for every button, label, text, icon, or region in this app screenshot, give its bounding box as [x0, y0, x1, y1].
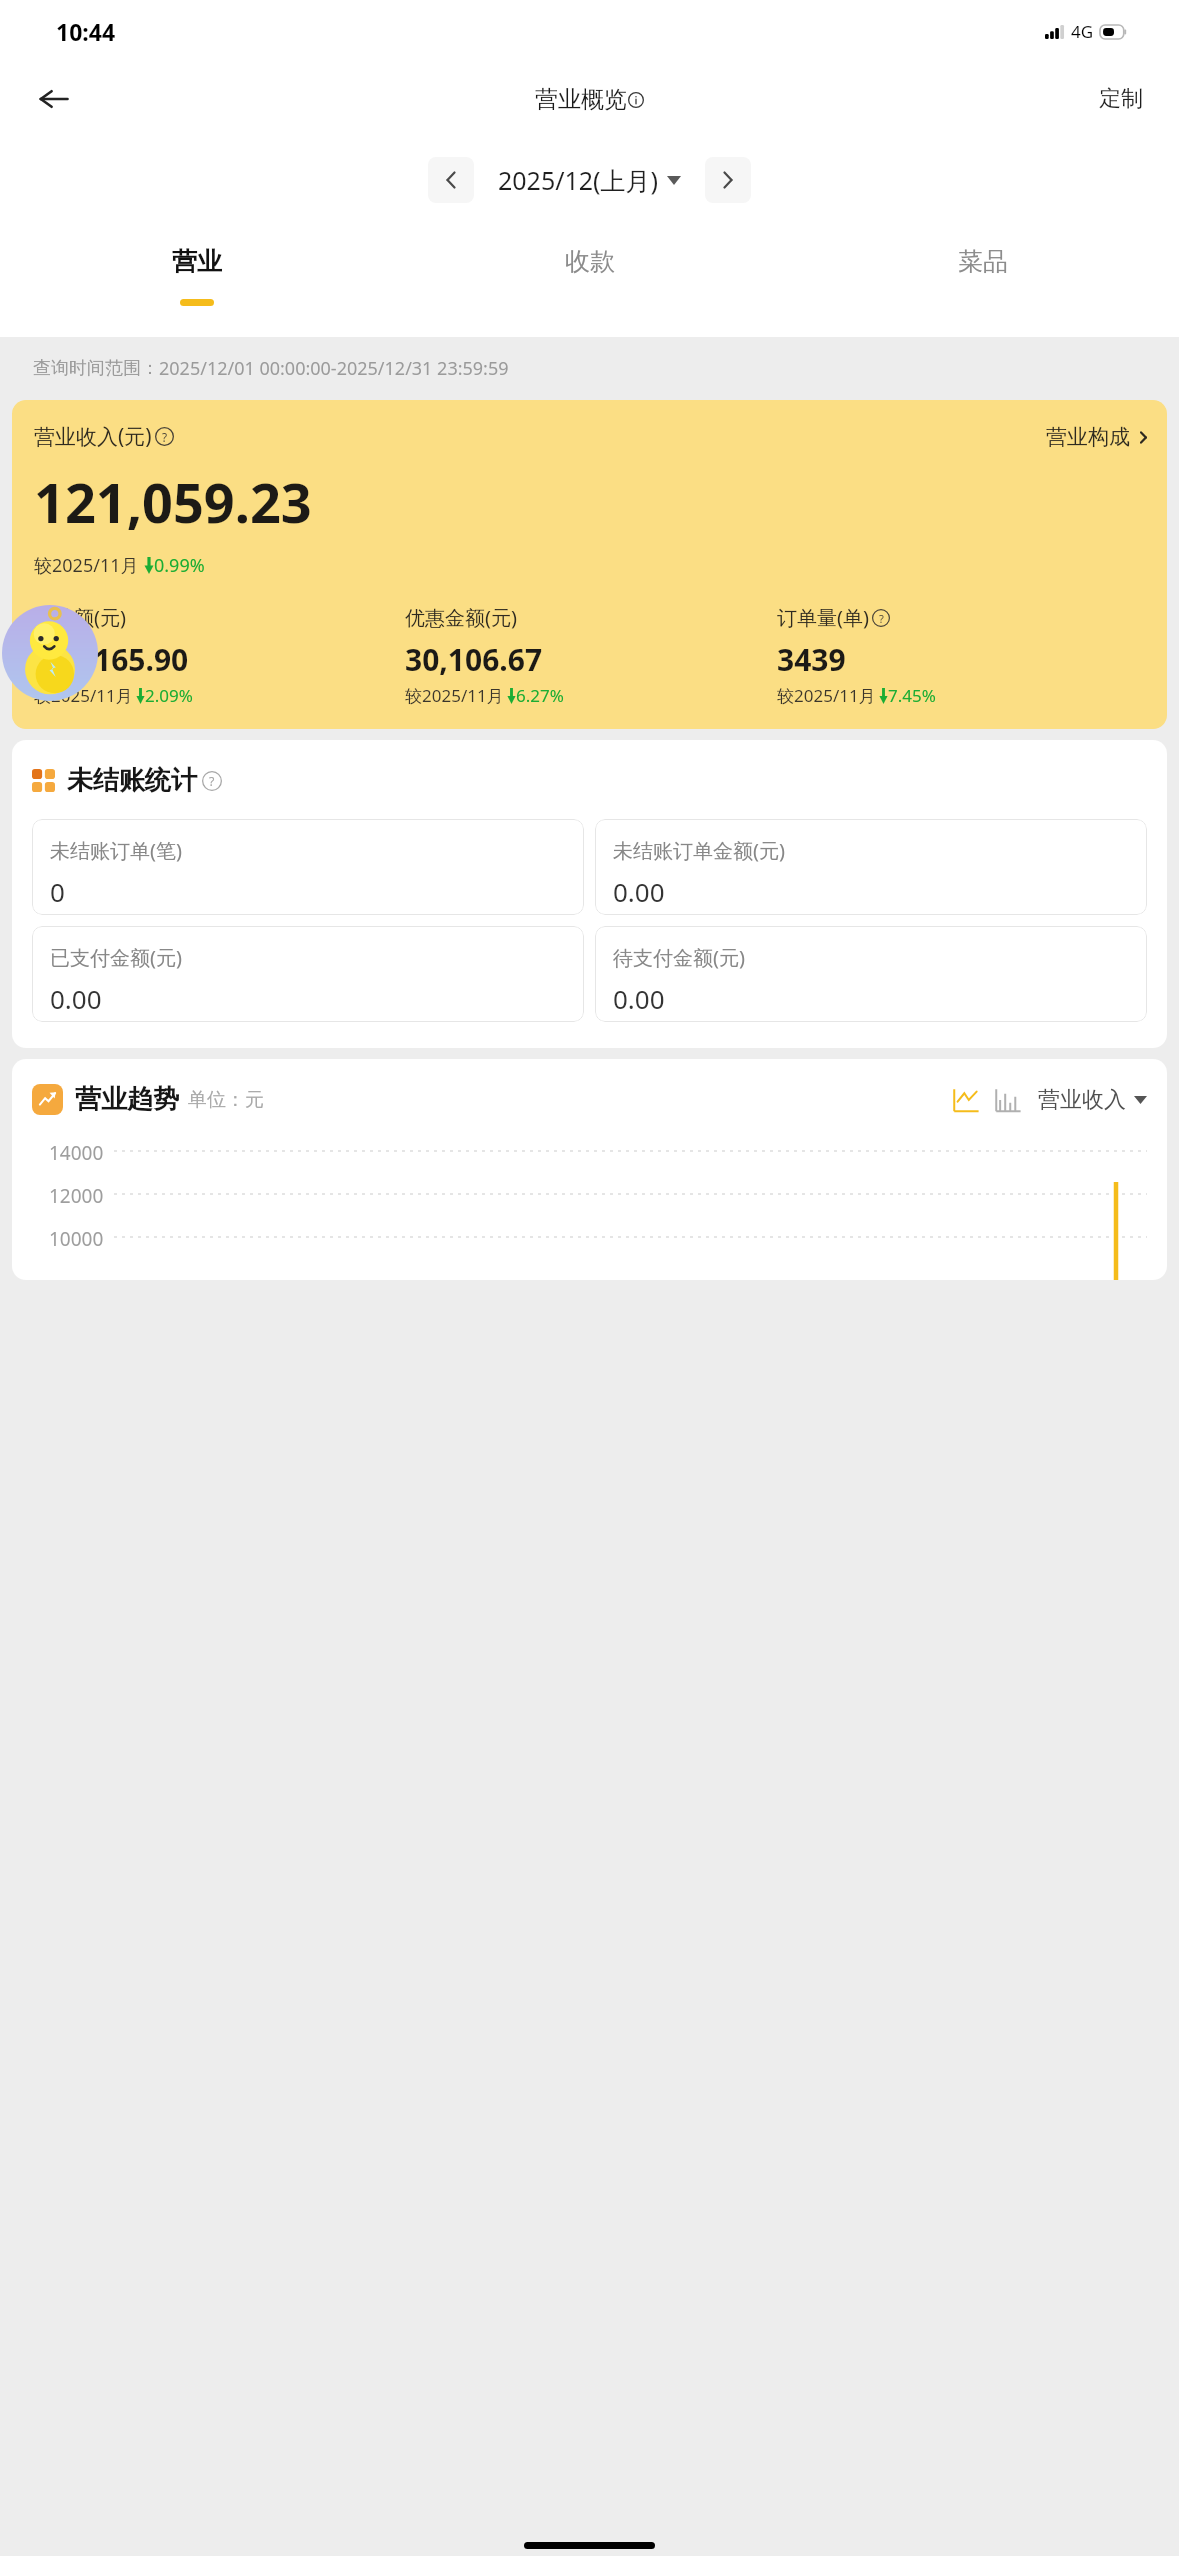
staticText: 未结账统计	[67, 764, 197, 797]
staticText: 营业额(元)	[34, 604, 126, 631]
staticText: 收款	[565, 246, 615, 277]
staticText: ?	[879, 611, 884, 626]
staticText: 定制	[1099, 85, 1143, 113]
staticText: 0.00	[613, 874, 665, 909]
staticText: 121,059.23	[34, 465, 312, 539]
staticText: 10:44	[56, 16, 116, 47]
staticText: 营业概览	[535, 85, 627, 114]
staticText: 营业	[172, 246, 222, 277]
staticText: 待支付金额(元)	[613, 944, 745, 971]
staticText: 未结账订单金额(元)	[613, 837, 785, 864]
staticText: 菜品	[958, 246, 1008, 277]
staticText: 营业收入(元)	[34, 422, 152, 451]
button[interactable]: 上一月	[428, 157, 474, 203]
staticText: 优惠金额(元)	[405, 604, 517, 631]
staticText: 2025/12/01 00:00:00-2025/12/31 23:59:59	[159, 356, 509, 381]
button[interactable]: 订单量(单)	[777, 604, 1149, 707]
staticText: 4G	[1071, 20, 1094, 43]
button[interactable]: 下一月	[705, 157, 751, 203]
button[interactable]: 营业收入(元)	[12, 400, 1167, 729]
button[interactable]: 未结账统计	[32, 764, 222, 797]
staticText: 营业趋势	[75, 1083, 179, 1116]
staticText: ?	[209, 773, 215, 790]
staticText: 2025/12(上月)	[498, 163, 659, 197]
button[interactable]: 已支付金额(元)	[32, 926, 584, 1022]
staticText: 查询时间范围：	[33, 357, 159, 380]
staticText: 较2025/11月	[405, 684, 504, 707]
staticText: 0.00	[613, 981, 665, 1016]
staticText: 订单量(单)	[777, 604, 869, 631]
staticText: 14000	[49, 1140, 104, 1166]
button[interactable]: 营业	[0, 224, 393, 337]
button[interactable]: 定制	[1093, 79, 1149, 119]
staticText: 6.27%	[516, 684, 564, 707]
staticText: 未结账订单(笔)	[50, 837, 182, 864]
button[interactable]: 营业额(元)	[34, 604, 405, 707]
button[interactable]: 2025/12(上月)	[498, 163, 681, 197]
button[interactable]: 营业收入	[1038, 1086, 1147, 1114]
staticText: 营业构成	[1046, 424, 1130, 450]
staticText: 7.45%	[888, 684, 936, 707]
button[interactable]: 优惠金额(元)	[405, 604, 777, 707]
staticText: 较2025/11月	[34, 684, 133, 707]
button[interactable]: 柱状图	[994, 1086, 1022, 1114]
button[interactable]: 未结账订单(笔)	[32, 819, 584, 915]
button[interactable]: 收款	[393, 224, 786, 337]
staticText: 已支付金额(元)	[50, 944, 182, 971]
staticText: 0.00	[50, 981, 102, 1016]
button[interactable]: 未结账订单金额(元)	[595, 819, 1147, 915]
staticText: 3439	[777, 639, 846, 680]
button[interactable]: 折线图	[952, 1086, 980, 1114]
staticText: 营业收入	[1038, 1086, 1126, 1114]
button[interactable]: 营业构成	[1046, 424, 1149, 450]
staticText: 较2025/11月	[777, 684, 876, 707]
staticText: 10000	[49, 1226, 104, 1252]
staticText: 2.09%	[145, 684, 193, 707]
staticText: 12000	[49, 1183, 104, 1209]
button[interactable]: 营业概览	[535, 85, 644, 114]
staticText: 30,106.67	[405, 639, 543, 680]
button[interactable]: 待支付金额(元)	[595, 926, 1147, 1022]
staticText: 0.99%	[154, 553, 205, 578]
staticText: 0	[50, 874, 65, 909]
staticText: 单位：元	[188, 1088, 264, 1112]
staticText: 151,165.90	[34, 639, 189, 680]
button[interactable]: 返回	[26, 71, 82, 127]
staticText: 较2025/11月	[34, 553, 139, 578]
button[interactable]: 菜品	[786, 224, 1179, 337]
staticText: ?	[162, 429, 168, 445]
